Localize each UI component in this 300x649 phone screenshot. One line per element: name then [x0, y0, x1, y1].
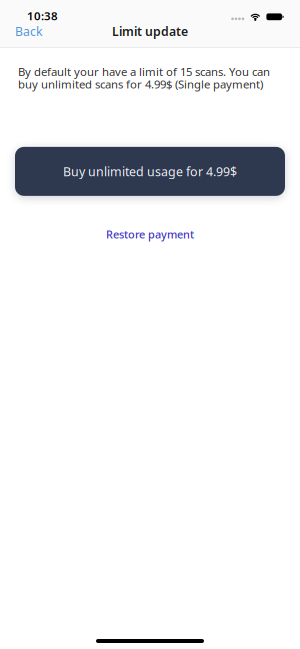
staticText: Buy unlimited usage for 4.99$ [63, 163, 237, 180]
button[interactable]: Buy unlimited usage for 4.99$ [15, 147, 285, 196]
staticText: 10:38 [27, 8, 58, 24]
button[interactable]: Back [0, 17, 56, 46]
staticText: By default your have a limit of 15 scans… [18, 64, 270, 92]
staticText: Limit update [112, 23, 188, 40]
staticText: Restore payment [106, 227, 194, 242]
staticText: Back [15, 23, 43, 40]
button[interactable]: Restore payment [92, 220, 208, 249]
